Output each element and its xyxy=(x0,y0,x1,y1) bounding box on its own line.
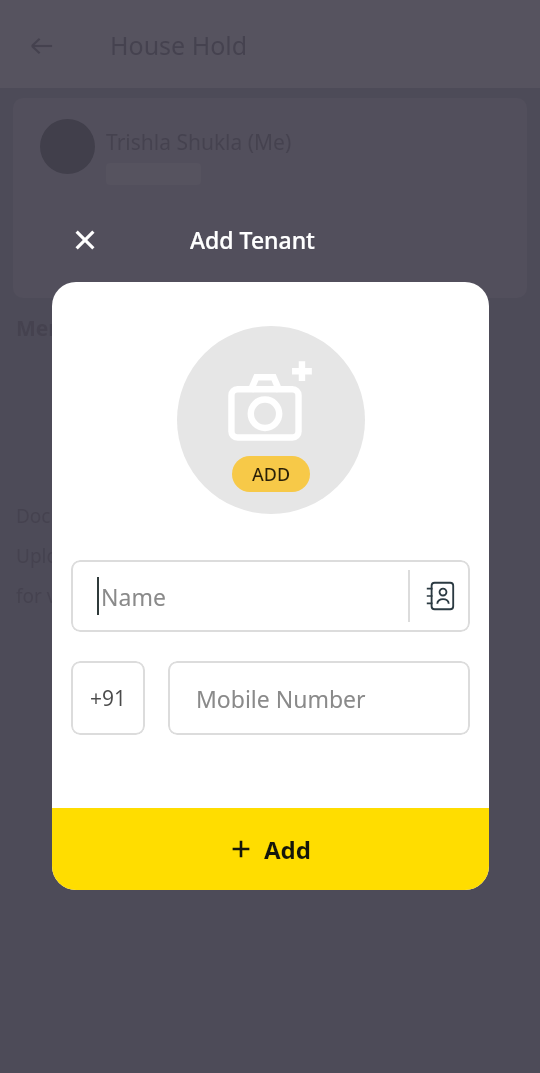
staticText: Members in House Hold xyxy=(16,314,266,343)
staticText: Mobile Number xyxy=(196,683,366,714)
staticText: Document xyxy=(16,503,110,529)
button[interactable]: Close xyxy=(63,218,107,262)
button[interactable]: Add photo xyxy=(177,326,365,514)
staticText: House Hold xyxy=(110,28,248,62)
staticText: Add xyxy=(264,833,311,866)
staticText: Trishla Shukla (Me) xyxy=(106,128,292,157)
staticText: +91 xyxy=(90,684,127,713)
button[interactable]: Name xyxy=(71,560,470,632)
button[interactable]: Trishla Shukla (Me) xyxy=(13,98,527,298)
button[interactable]: +91 xyxy=(71,661,145,735)
button[interactable]: Mobile Number xyxy=(168,661,470,735)
staticText: Upload your ID xyxy=(16,543,152,569)
staticText: for verification xyxy=(16,583,147,609)
button[interactable]: Back xyxy=(22,26,62,66)
staticText: Name xyxy=(101,581,166,612)
button[interactable]: Pick from contacts xyxy=(410,560,470,632)
button[interactable]: Add xyxy=(52,808,489,890)
staticText: Add Tenant xyxy=(190,224,315,255)
staticText: ADD xyxy=(252,462,291,487)
